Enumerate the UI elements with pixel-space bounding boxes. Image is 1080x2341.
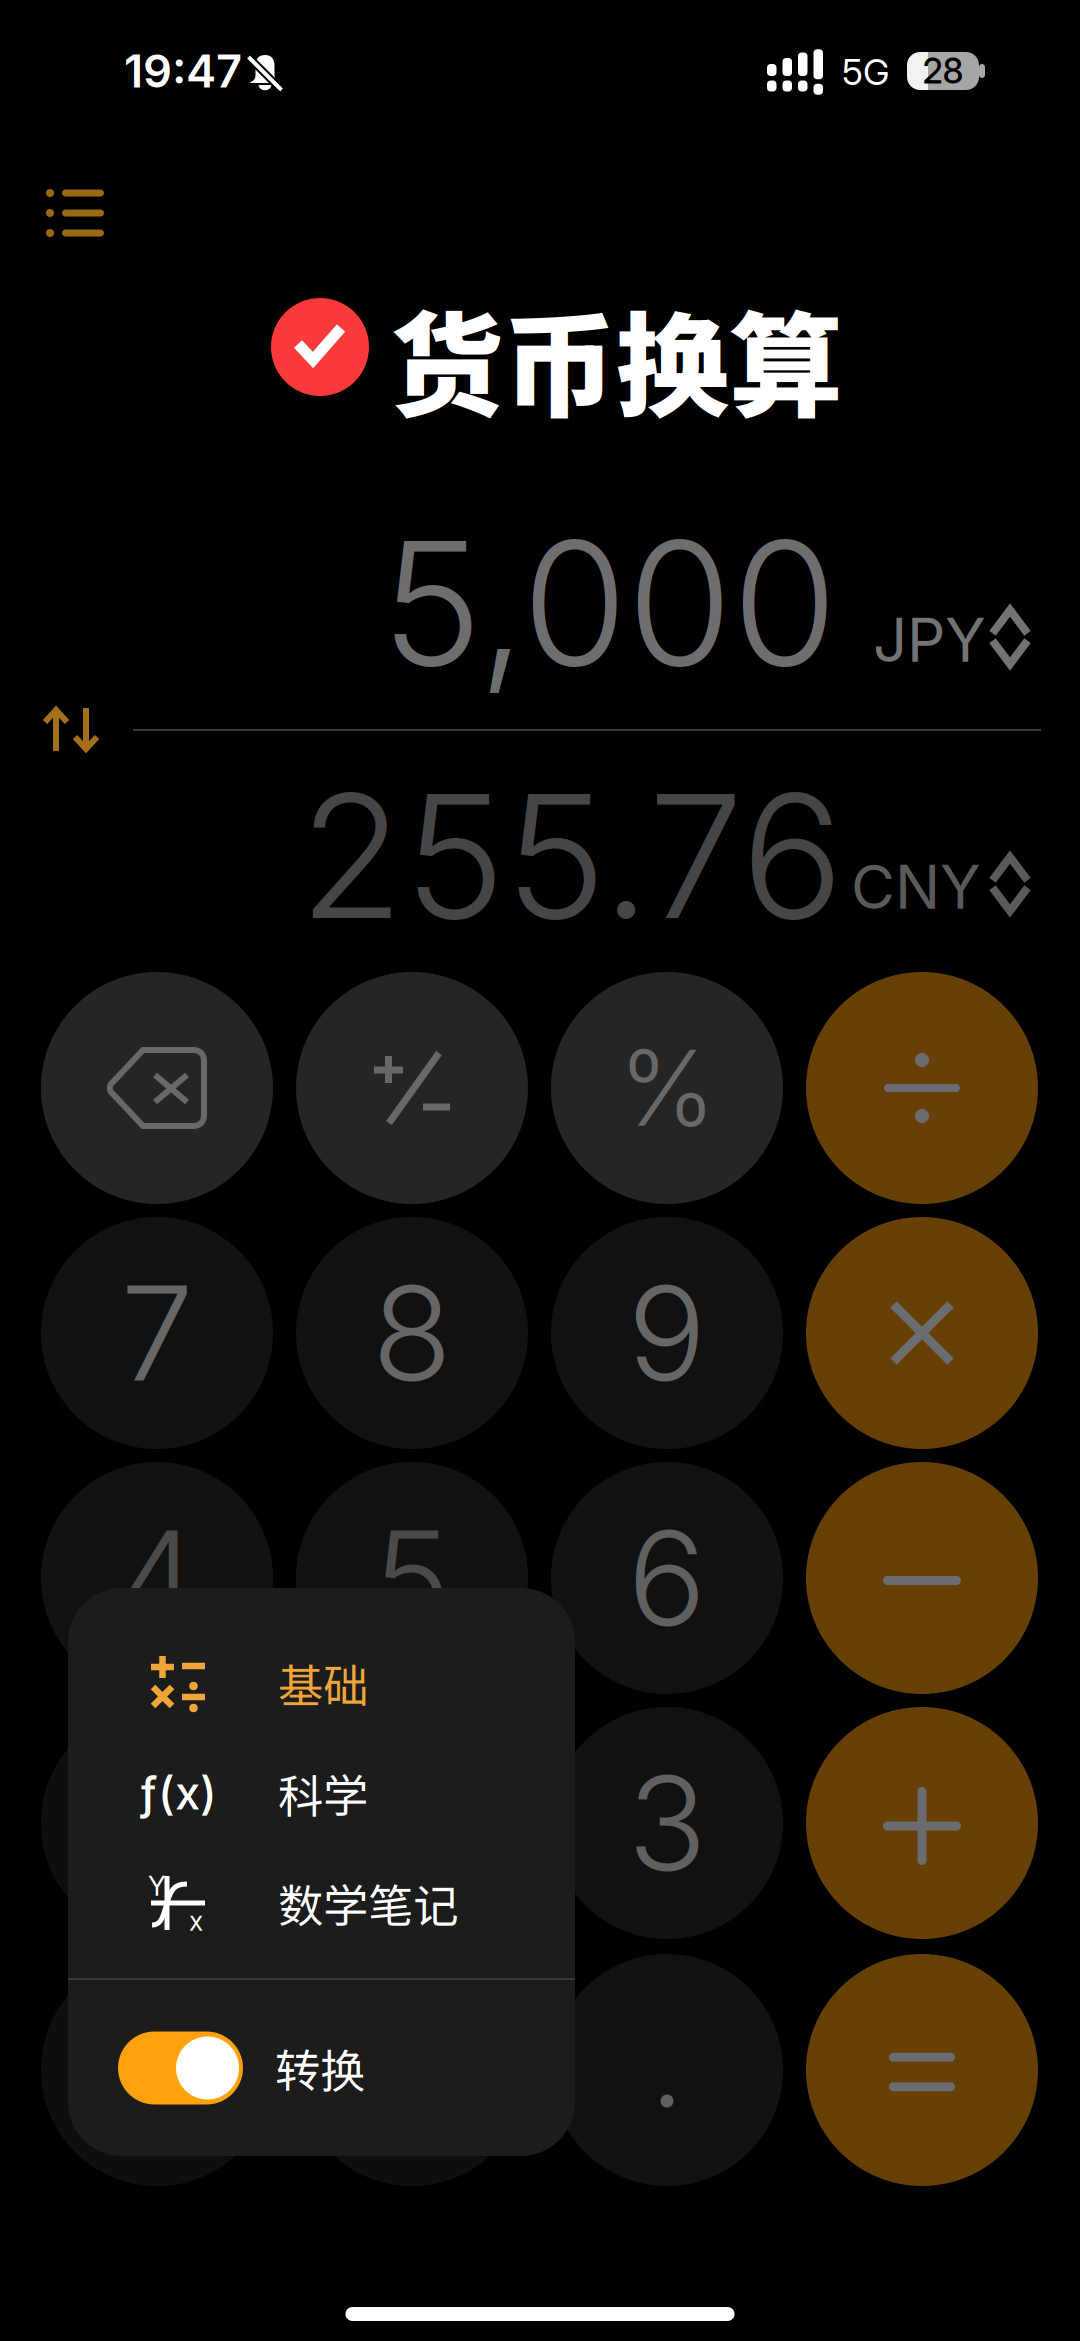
staticText: 3 bbox=[627, 1744, 706, 1902]
button[interactable]: Equals bbox=[806, 1954, 1038, 2186]
staticText: 5 bbox=[373, 1499, 451, 1657]
staticText: CNY bbox=[851, 851, 981, 923]
button[interactable]: Add bbox=[806, 1707, 1038, 1939]
button[interactable]: 5 bbox=[296, 1462, 528, 1694]
button[interactable]: 9 bbox=[551, 1217, 783, 1449]
staticText: 7 bbox=[120, 1254, 193, 1412]
staticText: 1 bbox=[131, 1744, 182, 1902]
button[interactable]: History bbox=[30, 178, 120, 248]
button[interactable]: ƒ(x) bbox=[68, 1738, 575, 1848]
staticText: 9 bbox=[627, 1254, 706, 1412]
staticText: 28 bbox=[922, 50, 963, 92]
button[interactable]: 6 bbox=[551, 1462, 783, 1694]
button[interactable]: 0 bbox=[41, 1954, 273, 2186]
staticText: 4 bbox=[116, 1499, 198, 1657]
button[interactable]: 4 bbox=[41, 1462, 273, 1694]
staticText: 19:47 bbox=[124, 44, 242, 98]
button[interactable]: Subtract bbox=[806, 1462, 1038, 1694]
staticText: 8 bbox=[372, 1254, 452, 1412]
button[interactable]: Divide bbox=[806, 972, 1038, 1204]
staticText: 255.76 bbox=[299, 753, 844, 959]
button[interactable]: Decimal bbox=[551, 1954, 783, 2186]
button[interactable]: 2 bbox=[296, 1707, 528, 1939]
staticText: 0 bbox=[116, 1991, 197, 2149]
staticText: ƒ(x) bbox=[139, 1766, 217, 1820]
button[interactable]: 基础 bbox=[68, 1628, 575, 1738]
button[interactable]: Percent bbox=[551, 972, 783, 1204]
staticText: 转换 bbox=[275, 2035, 365, 2101]
staticText: Y bbox=[148, 1870, 166, 1902]
staticText: 科学 bbox=[278, 1760, 368, 1826]
button[interactable]: Plus minus bbox=[296, 972, 528, 1204]
button[interactable]: 1 bbox=[41, 1707, 273, 1939]
staticText: 6 bbox=[627, 1499, 706, 1657]
staticText: 5G bbox=[842, 50, 889, 94]
staticText: x bbox=[189, 1905, 203, 1937]
staticText: 货币换算 bbox=[390, 276, 842, 440]
staticText: JPY bbox=[873, 604, 986, 676]
staticText: 数学笔记 bbox=[278, 1870, 458, 1936]
staticText: % bbox=[618, 1025, 715, 1151]
button[interactable]: 8 bbox=[296, 1217, 528, 1449]
staticText: 5,000 bbox=[381, 500, 837, 706]
button[interactable]: 转换 bbox=[68, 1980, 575, 2157]
button[interactable]: Y bbox=[68, 1848, 575, 1958]
button[interactable]: Delete bbox=[41, 972, 273, 1204]
button[interactable] bbox=[296, 1954, 528, 2186]
staticText: 2 bbox=[372, 1744, 452, 1902]
button[interactable]: 7 bbox=[41, 1217, 273, 1449]
button[interactable]: 3 bbox=[551, 1707, 783, 1939]
button[interactable]: Multiply bbox=[806, 1217, 1038, 1449]
staticText: 基础 bbox=[278, 1650, 368, 1716]
